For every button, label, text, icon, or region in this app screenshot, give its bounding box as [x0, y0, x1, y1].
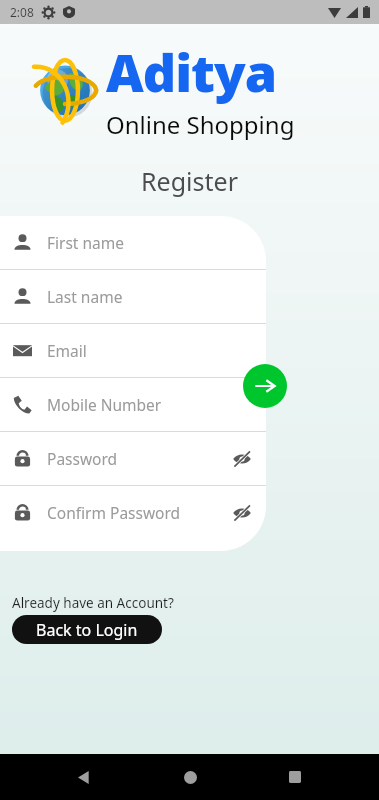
staticText: Online Shopping: [106, 108, 295, 141]
button[interactable]: Home: [168, 755, 212, 799]
staticText: Register: [0, 164, 379, 198]
button[interactable]: Back: [62, 755, 106, 799]
button[interactable]: Toggle password visibility: [232, 449, 252, 469]
staticText: First name: [47, 232, 266, 253]
staticText: Password: [47, 448, 232, 469]
button[interactable]: Back to Login: [12, 615, 162, 644]
button[interactable]: First name: [0, 216, 266, 269]
button[interactable]: Email: [0, 324, 266, 377]
staticText: Confirm Password: [47, 502, 232, 523]
button[interactable]: Recent apps: [273, 755, 317, 799]
staticText: Last name: [47, 286, 266, 307]
staticText: 2:08: [10, 4, 34, 20]
button[interactable]: Confirm Password: [0, 486, 266, 539]
button[interactable]: Toggle password visibility: [232, 503, 252, 523]
button[interactable]: Last name: [0, 270, 266, 323]
staticText: Already have an Account?: [12, 594, 174, 612]
staticText: Email: [47, 340, 266, 361]
staticText: Aditya: [106, 36, 277, 107]
button[interactable]: Next: [243, 364, 287, 408]
staticText: Back to Login: [36, 619, 138, 641]
button[interactable]: Mobile Number: [0, 378, 266, 431]
button[interactable]: Password: [0, 432, 266, 485]
staticText: Mobile Number: [47, 394, 266, 415]
